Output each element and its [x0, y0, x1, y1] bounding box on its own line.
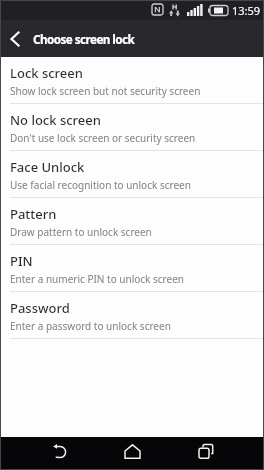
staticText: Draw pattern to unlock screen	[10, 225, 152, 239]
button[interactable]: PIN	[0, 245, 264, 292]
staticText: Enter a numeric PIN to unlock screen	[10, 272, 184, 286]
staticText: Use facial recognition to unlock screen	[10, 178, 191, 192]
button[interactable]	[38, 437, 78, 470]
staticText: No lock screen	[10, 111, 101, 129]
button[interactable]	[186, 437, 226, 470]
staticText: Password	[10, 299, 70, 317]
button[interactable]: Password	[0, 292, 264, 339]
button[interactable]: Lock screen	[0, 57, 264, 104]
button[interactable]	[112, 437, 152, 470]
staticText: Pattern	[10, 205, 57, 223]
staticText: Face Unlock	[10, 158, 85, 176]
button[interactable]: Face Unlock	[0, 151, 264, 198]
button[interactable]: No lock screen	[0, 104, 264, 151]
staticText: Lock screen	[10, 64, 83, 82]
staticText: Show lock screen but not security screen	[10, 84, 201, 98]
staticText: Don't use lock screen or security screen	[10, 131, 196, 145]
button[interactable]: Choose screen lock	[0, 20, 264, 57]
staticText: Choose screen lock	[33, 31, 135, 47]
button[interactable]: Pattern	[0, 198, 264, 245]
staticText: PIN	[10, 252, 33, 270]
staticText: Enter a password to unlock screen	[10, 319, 171, 333]
staticText: 13:59	[232, 3, 261, 18]
